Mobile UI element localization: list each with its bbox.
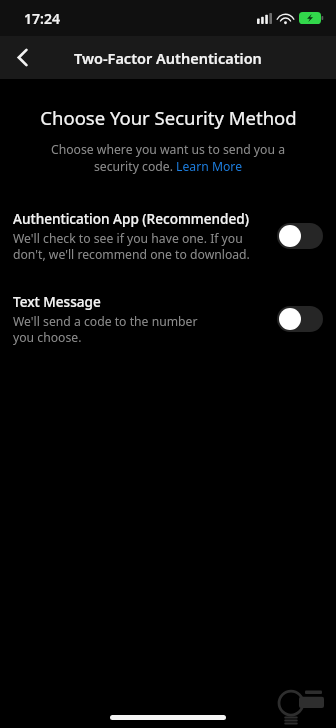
staticText: Choose where you want us to send you a s… (28, 141, 308, 175)
staticText: We'll check to see if you have one. If y… (13, 230, 250, 262)
button[interactable]: Toggle (277, 223, 323, 249)
staticText: 17:24 (24, 9, 60, 28)
staticText: Choose Your Security Method (40, 105, 297, 130)
staticText: Two-Factor Authentication (74, 48, 262, 68)
button[interactable]: Toggle (277, 306, 323, 332)
button[interactable]: Back (0, 36, 44, 79)
staticText: Authentication App (Recommended) (13, 209, 249, 228)
button[interactable]: Authentication App (Recommended) (0, 203, 336, 268)
staticText: Text Message (13, 292, 101, 311)
button[interactable]: Text Message (0, 286, 336, 351)
staticText: We'll send a code to the number you choo… (13, 313, 198, 345)
